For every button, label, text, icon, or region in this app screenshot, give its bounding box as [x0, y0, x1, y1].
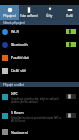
button[interactable]: Toggle: [66, 113, 76, 118]
staticText: Účty: [46, 14, 53, 18]
button[interactable]: Toto zařízení: [19, 5, 39, 20]
staticText: Další sítě: [11, 68, 27, 73]
button[interactable]: NFC: [0, 87, 79, 106]
staticText: Připojit a sdílet: [3, 83, 24, 87]
staticText: Odesílání souborů prostřednictvím NFC a …: [11, 116, 64, 122]
button[interactable]: S Beam: [0, 106, 79, 125]
button[interactable]: Účty: [39, 5, 59, 20]
button[interactable]: Další sítě: [0, 64, 79, 77]
button[interactable]: Toggle: [66, 42, 76, 47]
staticText: Toto zařízení: [20, 14, 38, 18]
button[interactable]: Nastavení: [0, 125, 79, 139]
staticText: S Beam: [11, 110, 24, 115]
button[interactable]: Toggle: [66, 94, 76, 99]
button[interactable]: Použití dat: [0, 51, 79, 64]
staticText: Umožňuje výměnu dat, když se zařízení do…: [11, 97, 64, 103]
staticText: Nastavení: [11, 130, 28, 135]
staticText: Síťová připojení: [3, 21, 25, 25]
button[interactable]: Bluetooth: [0, 38, 79, 51]
button[interactable]: Toggle: [66, 29, 76, 34]
button[interactable]: Připojení: [0, 5, 19, 20]
staticText: Připojení: [3, 14, 16, 18]
staticText: NFC: [11, 91, 18, 96]
staticText: Použití dat: [11, 55, 29, 60]
staticText: Bluetooth: [11, 42, 28, 47]
staticText: Wi-Fi: [11, 29, 20, 34]
button[interactable]: Další: [59, 5, 79, 20]
staticText: Další: [66, 14, 73, 18]
button[interactable]: Wi-Fi: [0, 25, 79, 38]
